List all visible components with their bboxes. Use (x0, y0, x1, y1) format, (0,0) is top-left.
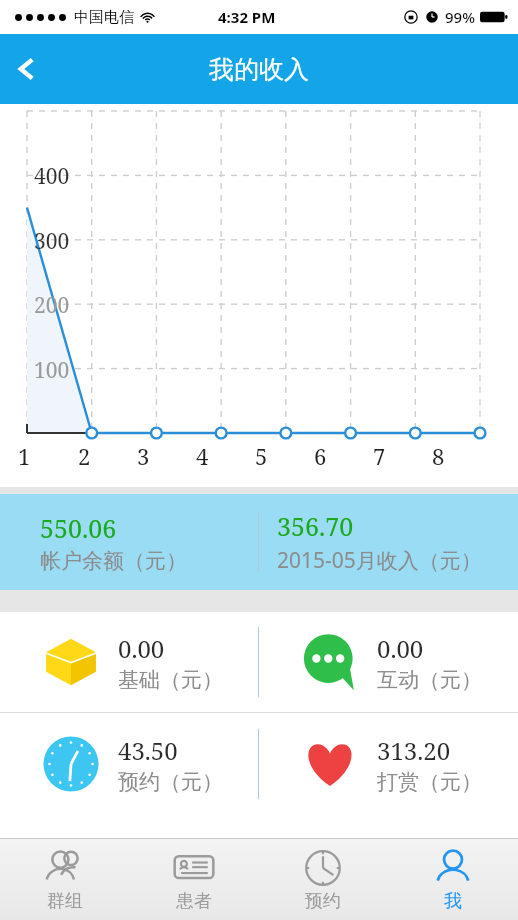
button[interactable]: 预约 (258, 839, 388, 920)
staticText: 400 (34, 162, 70, 191)
staticText: 43.50 (118, 734, 178, 767)
button[interactable]: 43.50 (0, 713, 258, 815)
staticText: 200 (34, 291, 70, 320)
staticText: 互动（元） (377, 667, 482, 693)
staticText: 患者 (176, 890, 212, 913)
button[interactable]: 550.06 (0, 494, 258, 590)
staticText: 99% (445, 7, 475, 27)
button[interactable]: 0.00 (259, 612, 518, 712)
button[interactable]: 313.20 (259, 713, 518, 815)
staticText: 帐户余额（元） (40, 548, 187, 574)
staticText: 2015-05月收入（元） (277, 546, 482, 575)
staticText: 8 (432, 441, 445, 471)
staticText: 550.06 (40, 511, 117, 545)
button[interactable]: 0.00 (0, 612, 258, 712)
staticText: 4:32 PM (218, 7, 276, 27)
button[interactable]: Back (0, 42, 54, 96)
staticText: 打赏（元） (377, 769, 482, 795)
staticText: 313.20 (377, 734, 451, 767)
staticText: 1 (18, 441, 31, 471)
staticText: 3 (137, 441, 150, 471)
staticText: 0.00 (377, 632, 424, 665)
staticText: 7 (373, 441, 386, 471)
staticText: 中国电信 (74, 8, 134, 27)
staticText: 356.70 (277, 509, 354, 543)
staticText: 预约 (305, 890, 341, 913)
staticText: 基础（元） (118, 667, 223, 693)
staticText: 我 (444, 890, 462, 913)
staticText: 100 (34, 356, 70, 385)
staticText: 群组 (47, 890, 83, 913)
button[interactable]: 356.70 (259, 494, 518, 590)
button[interactable]: 群组 (0, 839, 129, 920)
button[interactable]: 患者 (129, 839, 258, 920)
staticText: 预约（元） (118, 769, 223, 795)
staticText: 0.00 (118, 632, 165, 665)
button[interactable]: 我 (388, 839, 518, 920)
staticText: 300 (34, 227, 70, 256)
staticText: 5 (255, 441, 268, 471)
staticText: 2 (78, 441, 91, 471)
staticText: 我的收入 (209, 54, 309, 85)
staticText: 6 (314, 441, 327, 471)
staticText: 4 (196, 441, 209, 471)
